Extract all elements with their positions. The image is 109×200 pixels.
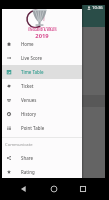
staticText: Point Table [21,125,45,131]
staticText: Communicate [5,142,33,148]
staticText: Share [21,155,33,161]
button[interactable]: History [2,107,82,121]
button[interactable]: Rating [2,165,82,179]
staticText: Live Score [21,55,43,61]
button[interactable]: Point Table [2,121,82,135]
staticText: Rating [21,169,35,175]
staticText: Venues [21,97,37,103]
staticText: Time Table [21,69,44,75]
staticText: Ticket [21,83,34,89]
staticText: 10:36 [92,5,103,11]
button[interactable]: Venues [2,93,82,107]
staticText: ENGLAND & WALES [28,28,57,32]
staticText: History [21,111,37,117]
button[interactable]: Ticket [2,79,82,93]
button[interactable]: Home [47,182,61,196]
button[interactable]: Share [2,151,82,165]
button[interactable]: Recent apps [76,182,90,196]
button[interactable]: Live Score [2,51,82,65]
staticText: 2019 [35,32,49,40]
staticText: ICC MEN'S CRICKET WORLD CUP [28,26,57,28]
staticText: Home [21,41,34,47]
button[interactable]: Time Table [2,65,82,79]
button[interactable]: Home [2,37,82,51]
button[interactable]: Back [17,182,31,196]
